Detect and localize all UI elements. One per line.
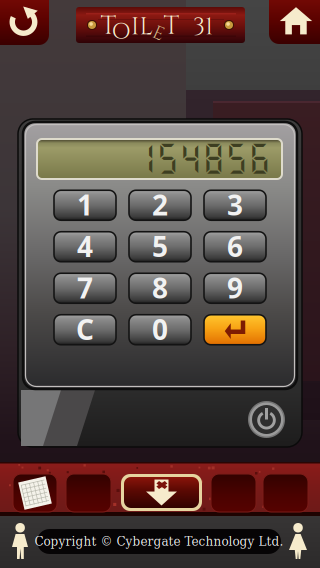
staticText: 5 xyxy=(152,228,168,265)
button[interactable]: 6 xyxy=(204,232,266,262)
button[interactable]: Close keypad xyxy=(121,474,202,511)
button[interactable]: Power xyxy=(248,401,285,438)
button[interactable]: 3 xyxy=(204,190,266,220)
button[interactable]: 1 xyxy=(54,190,116,220)
staticText: 4 xyxy=(77,228,93,265)
staticText: L xyxy=(139,11,152,43)
staticText: 7 xyxy=(77,269,93,306)
button[interactable]: 7 xyxy=(54,273,116,303)
button[interactable]: Enter xyxy=(204,315,266,345)
staticText: Copyright © Cybergate Technology Ltd. xyxy=(34,534,283,548)
button[interactable]: 5 xyxy=(129,232,191,262)
button[interactable]: 0 xyxy=(129,315,191,345)
staticText: 154856 xyxy=(133,139,271,177)
button[interactable]: C xyxy=(54,315,116,345)
staticText: 8 xyxy=(152,269,168,306)
staticText: 31 xyxy=(193,11,213,43)
button[interactable]: Paper note xyxy=(13,474,57,512)
staticText: 3 xyxy=(227,186,243,223)
staticText: T xyxy=(100,9,116,43)
button[interactable]: Restart xyxy=(0,0,49,45)
button[interactable]: 2 xyxy=(129,190,191,220)
button[interactable]: 4 xyxy=(54,232,116,262)
staticText: 6 xyxy=(227,228,243,265)
staticText: 0 xyxy=(152,311,168,348)
staticText: 2 xyxy=(152,186,168,223)
staticText: C xyxy=(76,311,94,348)
button[interactable]: 8 xyxy=(129,273,191,303)
staticText: I xyxy=(131,11,139,43)
staticText: O xyxy=(111,17,130,47)
staticText: T xyxy=(163,9,179,43)
staticText: E xyxy=(153,21,164,46)
staticText: 9 xyxy=(227,269,243,306)
button[interactable]: Home xyxy=(269,0,320,44)
button[interactable]: 9 xyxy=(204,273,266,303)
staticText: 1 xyxy=(77,186,93,223)
